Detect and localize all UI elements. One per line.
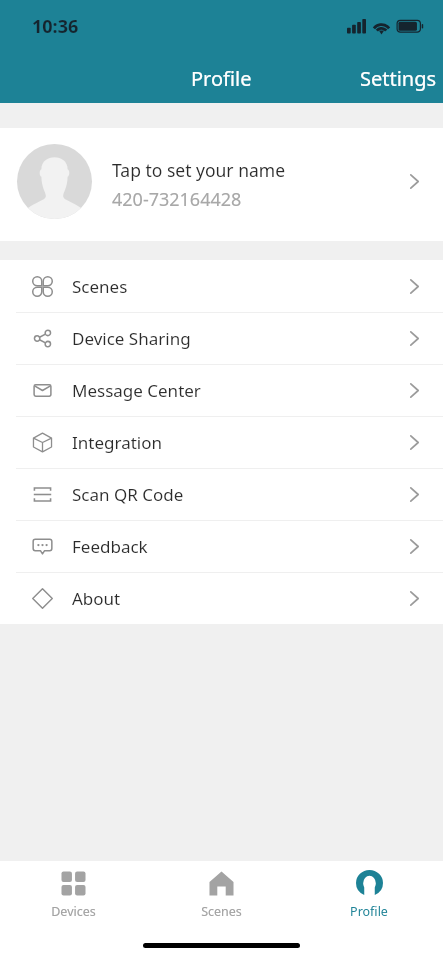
button[interactable]: About [0, 573, 443, 624]
button[interactable]: Device Sharing [0, 313, 443, 364]
staticText: Scan QR Code [72, 483, 184, 506]
staticText: Message Center [72, 379, 201, 402]
button[interactable]: Integration [0, 417, 443, 468]
button[interactable]: Devices [0, 861, 147, 923]
staticText: Integration [72, 431, 162, 454]
button[interactable]: Message Center [0, 365, 443, 416]
staticText: Feedback [72, 535, 148, 558]
staticText: Profile [350, 903, 388, 920]
staticText: Profile [191, 65, 252, 92]
button[interactable]: Settings [348, 57, 443, 100]
staticText: Scenes [201, 903, 242, 920]
staticText: Device Sharing [72, 327, 191, 350]
staticText: 420-732164428 [112, 187, 242, 212]
button[interactable]: Feedback [0, 521, 443, 572]
button[interactable]: Scan QR Code [0, 469, 443, 520]
button[interactable]: Scenes [0, 260, 443, 312]
button[interactable]: Scenes [147, 861, 295, 923]
staticText: About [72, 587, 121, 610]
button[interactable]: Tap to set your name [0, 128, 443, 241]
staticText: Scenes [72, 275, 128, 298]
staticText: 10:36 [32, 14, 79, 39]
button[interactable]: Profile [295, 861, 443, 923]
staticText: Devices [51, 903, 96, 920]
staticText: Tap to set your name [112, 158, 286, 182]
staticText: Settings [360, 65, 437, 92]
